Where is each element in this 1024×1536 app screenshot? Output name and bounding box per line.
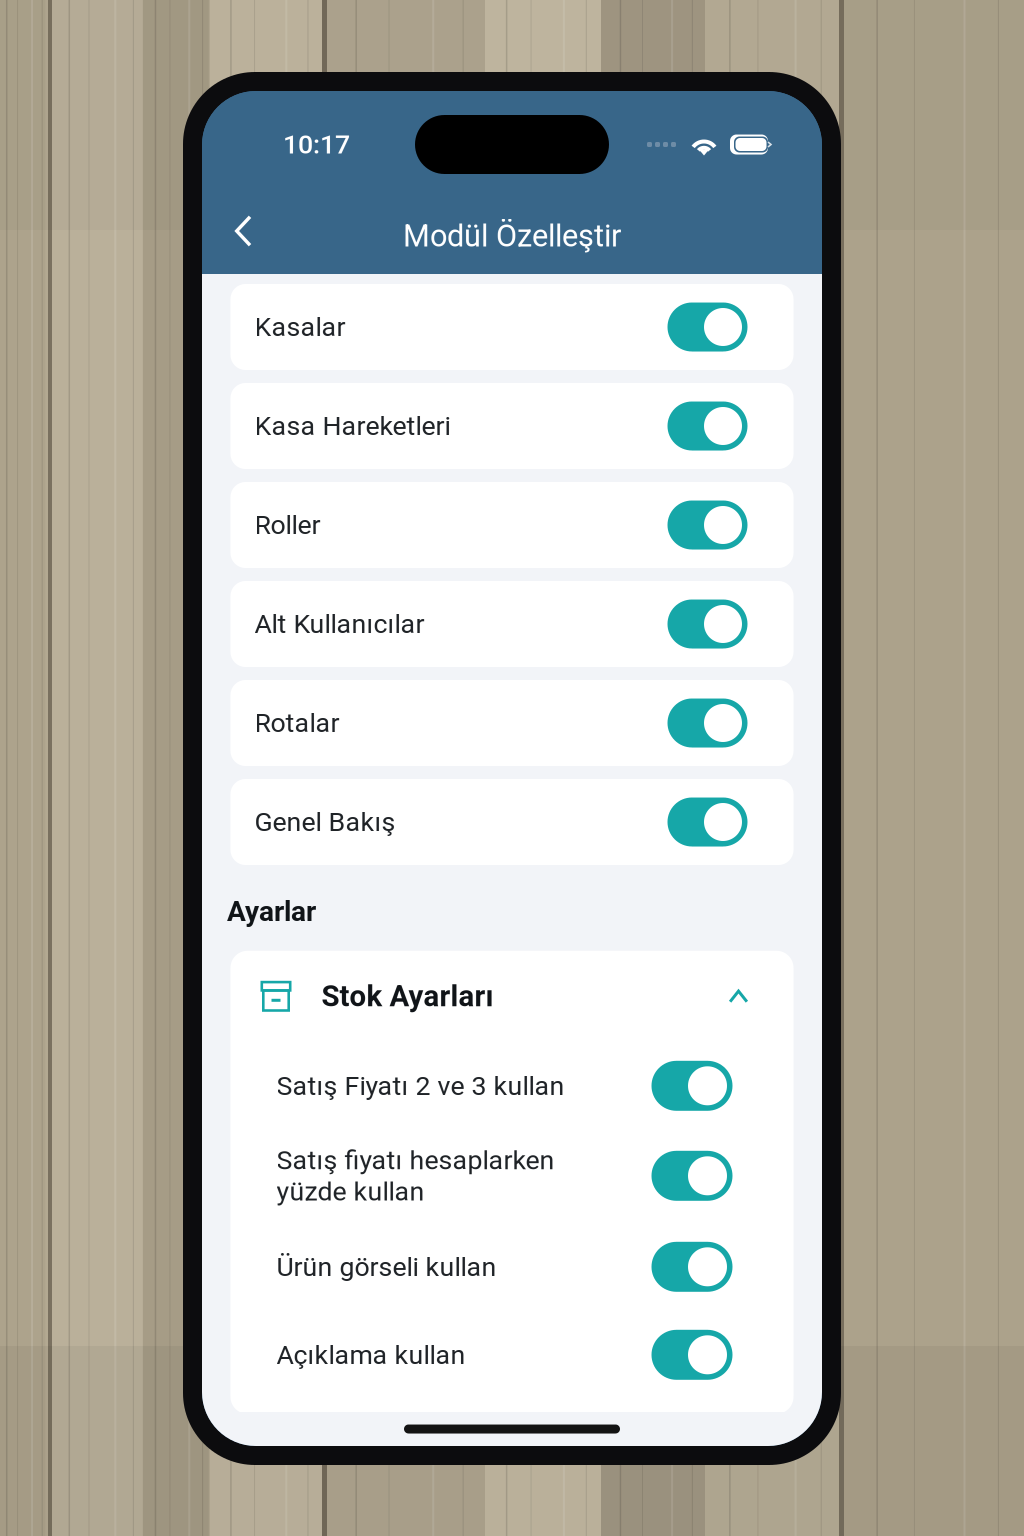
staticText: Açıklama kullan — [276, 1339, 465, 1370]
button[interactable]: Back — [214, 202, 272, 260]
staticText: Kasa Hareketleri — [254, 410, 450, 442]
button[interactable]: Stok Ayarları — [230, 951, 793, 1042]
button[interactable]: Satış Fiyatı 2 ve 3 kullan — [230, 1042, 793, 1130]
staticText: Kasalar — [254, 311, 345, 343]
staticText: Modül Özelleştir — [403, 218, 621, 254]
button[interactable]: Kasalar — [230, 284, 793, 370]
button[interactable]: Rotalar — [230, 680, 793, 766]
button[interactable]: Alt Kullanıcılar — [230, 581, 793, 667]
staticText: Satış fiyatı hesaplarken yüzde kullan — [276, 1145, 554, 1207]
staticText: Ayarlar — [227, 895, 316, 928]
button[interactable]: Roller — [230, 482, 793, 568]
staticText: Genel Bakış — [254, 806, 395, 838]
button[interactable]: Kasa Hareketleri — [230, 383, 793, 469]
button[interactable]: Ürün görseli kullan — [230, 1222, 793, 1312]
staticText: Satış Fiyatı 2 ve 3 kullan — [276, 1070, 564, 1101]
staticText: Roller — [254, 509, 320, 541]
staticText: Alt Kullanıcılar — [254, 608, 424, 640]
button[interactable]: Satış fiyatı hesaplarken yüzde kullan — [230, 1130, 793, 1222]
button[interactable]: Genel Bakış — [230, 779, 793, 865]
staticText: Stok Ayarları — [321, 979, 493, 1013]
staticText: Rotalar — [254, 707, 339, 739]
staticText: Ürün görseli kullan — [276, 1251, 496, 1282]
staticText: 10:17 — [283, 129, 350, 160]
button[interactable]: Açıklama kullan — [230, 1312, 793, 1398]
